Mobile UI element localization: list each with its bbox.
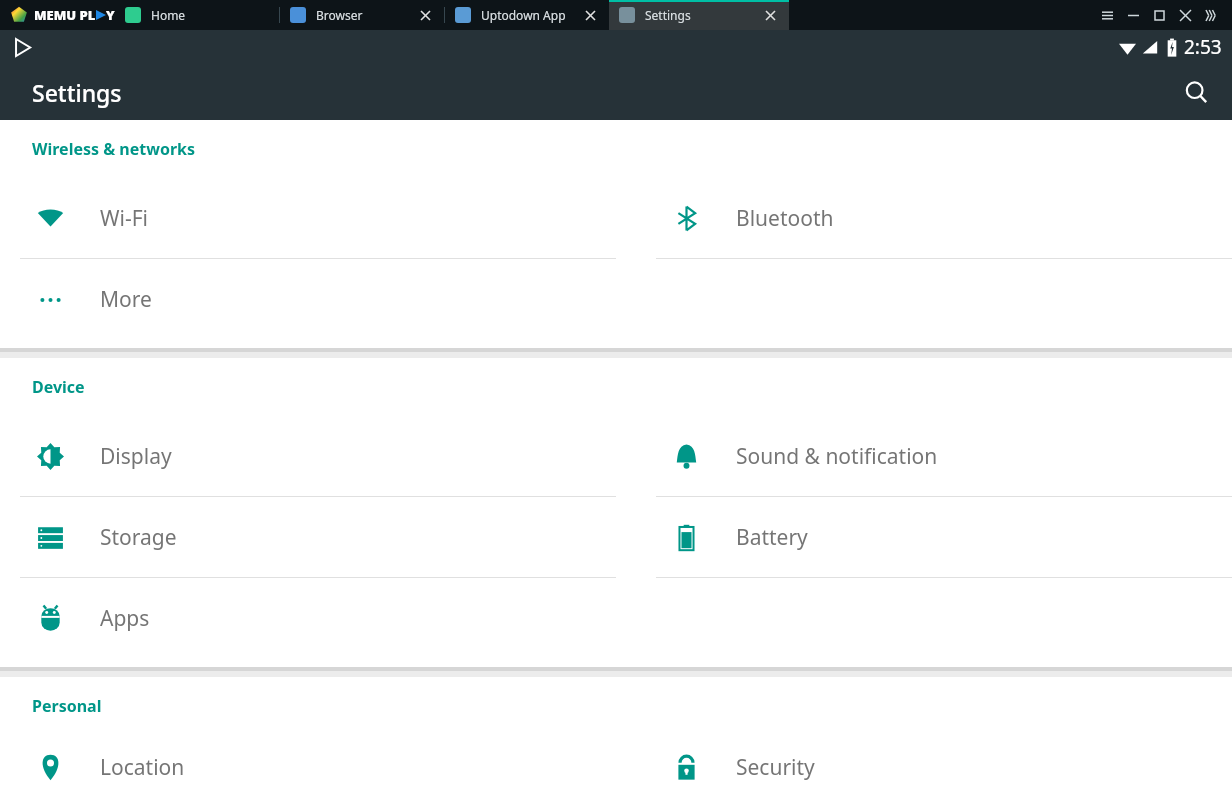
staticText: Battery <box>736 523 808 552</box>
staticText: Location <box>100 753 185 782</box>
button[interactable]: Location <box>0 735 616 800</box>
button[interactable]: Uptodown App Store <box>445 0 609 30</box>
button[interactable]: More <box>1198 2 1224 28</box>
button[interactable]: Search <box>1176 72 1216 112</box>
button[interactable]: Close tab <box>581 6 599 24</box>
staticText: 2:53 <box>1184 34 1222 60</box>
button[interactable]: Sound & notification <box>636 416 1232 497</box>
button[interactable]: Bluetooth <box>636 178 1232 259</box>
button[interactable]: Display <box>0 416 616 497</box>
staticText: MEMU PL <box>34 6 96 24</box>
button[interactable]: Browser <box>280 0 444 30</box>
staticText: Device <box>32 376 85 398</box>
staticText: Settings <box>645 7 757 23</box>
staticText: Wi-Fi <box>100 204 149 233</box>
button[interactable]: Storage <box>0 497 616 578</box>
button[interactable]: Apps <box>0 578 616 659</box>
staticText: Sound & notification <box>736 442 938 471</box>
button[interactable]: Menu <box>1094 2 1120 28</box>
staticText: Settings <box>32 77 122 108</box>
button[interactable]: Maximize <box>1146 2 1172 28</box>
staticText: More <box>100 285 152 314</box>
button[interactable]: Battery <box>636 497 1232 578</box>
staticText: Personal <box>32 695 102 717</box>
staticText: Browser <box>316 7 412 23</box>
staticText: Display <box>100 442 172 471</box>
staticText: Home <box>151 7 269 23</box>
button[interactable]: Close tab <box>416 6 434 24</box>
staticText: Bluetooth <box>736 204 834 233</box>
button[interactable]: Minimize <box>1120 2 1146 28</box>
staticText: Uptodown App Store <box>481 7 577 23</box>
staticText: Wireless & networks <box>32 138 196 160</box>
button[interactable]: Close <box>1172 2 1198 28</box>
staticText: Security <box>736 753 815 782</box>
button[interactable]: Close tab <box>761 6 779 24</box>
button[interactable]: Settings <box>609 0 789 30</box>
button[interactable]: Security <box>636 735 1232 800</box>
button[interactable]: More <box>0 259 616 340</box>
button[interactable]: Home <box>115 0 279 30</box>
button[interactable]: Wi-Fi <box>0 178 616 259</box>
staticText: Storage <box>100 523 177 552</box>
staticText: Y <box>106 6 115 24</box>
staticText: Apps <box>100 604 150 633</box>
